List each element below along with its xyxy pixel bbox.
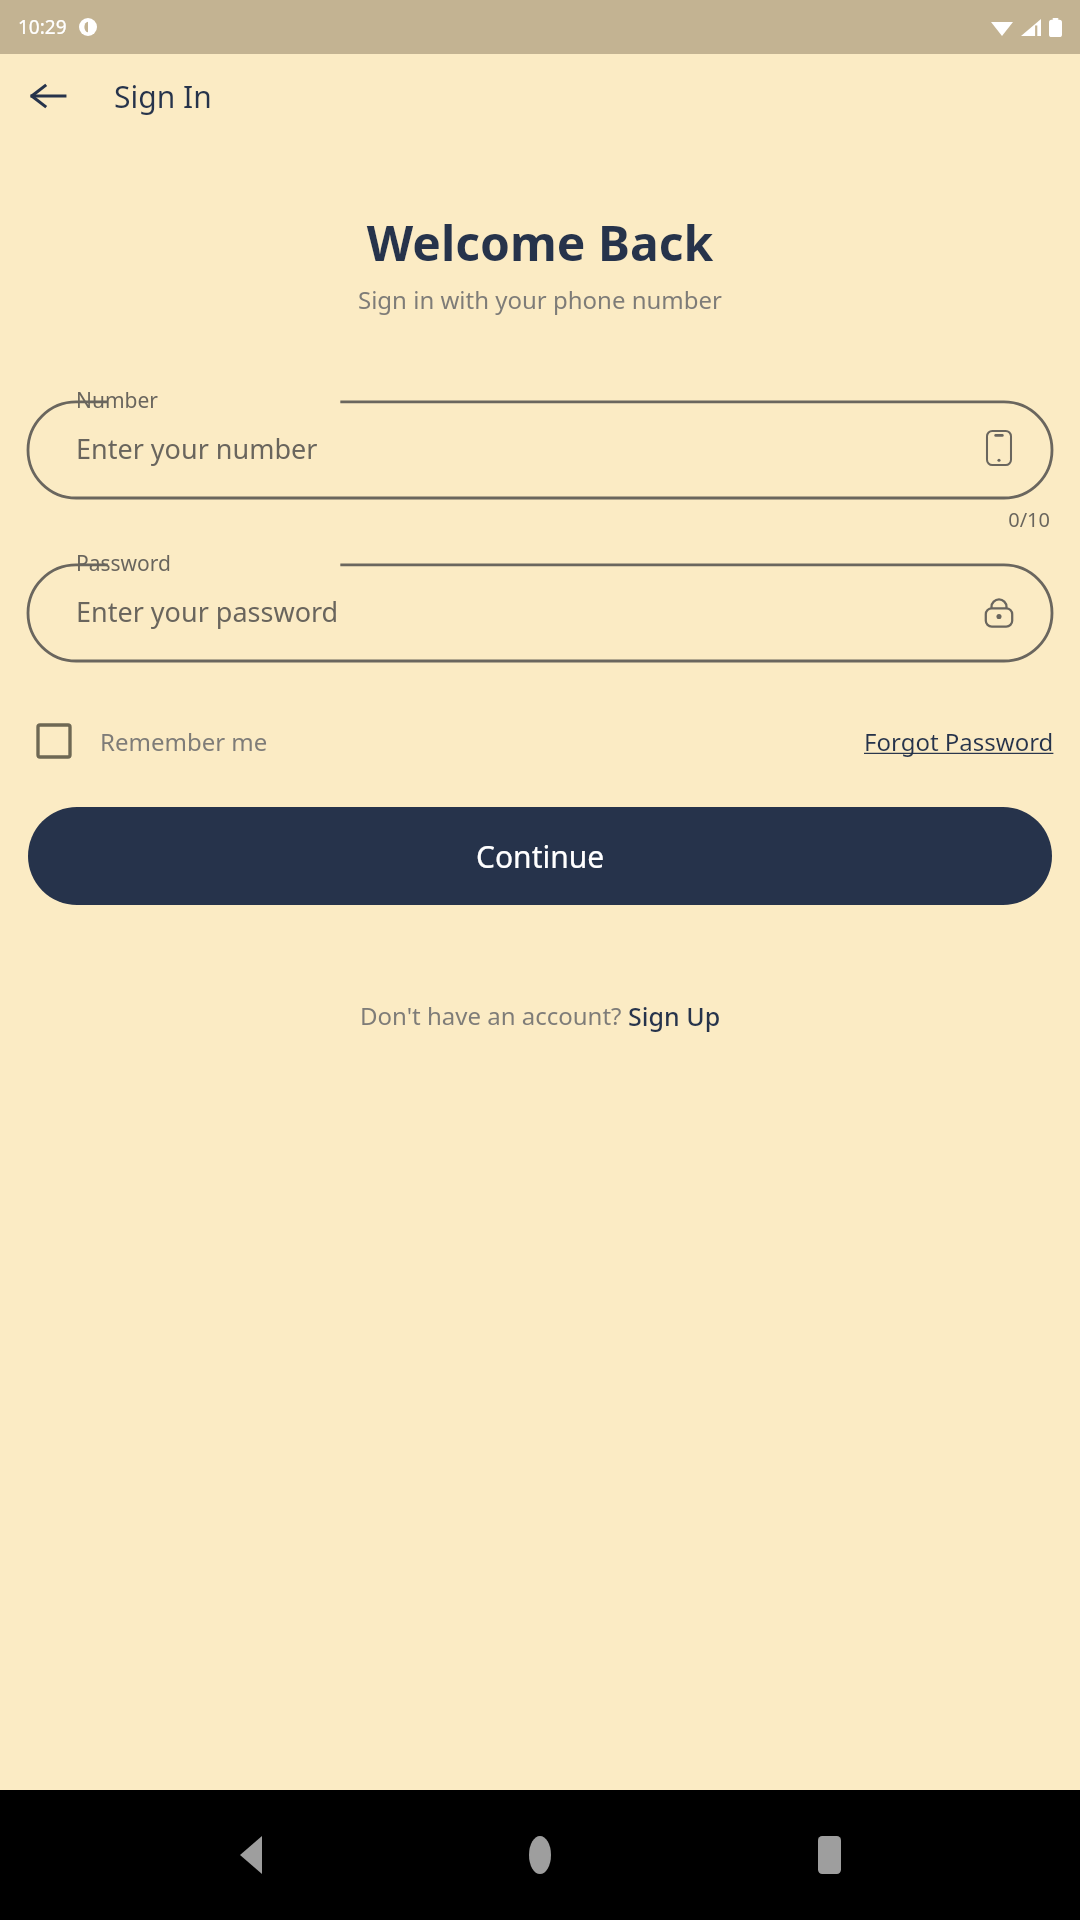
button[interactable]: Forgot Password (864, 725, 1054, 758)
staticText: 0/10 (0, 506, 1050, 533)
button[interactable]: Sign Up (628, 999, 721, 1033)
staticText: Sign Up (628, 999, 721, 1033)
staticText: Enter your password (76, 593, 339, 630)
button[interactable]: Continue (28, 807, 1052, 905)
staticText: Welcome Back (0, 210, 1080, 275)
staticText: Sign In (114, 76, 212, 117)
button[interactable]: Home (502, 1817, 578, 1893)
other: Phone (978, 427, 1020, 469)
staticText: Remember me (100, 725, 268, 758)
staticText: Number (76, 386, 159, 415)
button[interactable]: Back (213, 1817, 289, 1893)
other: Password (978, 590, 1020, 632)
button[interactable]: Recent apps (791, 1817, 867, 1893)
button[interactable]: Remember me (26, 713, 268, 769)
button[interactable]: Back (20, 68, 76, 124)
button[interactable]: Number (28, 380, 1052, 498)
staticText: Password (76, 549, 171, 578)
staticText: Enter your number (76, 430, 318, 467)
staticText: Sign in with your phone number (0, 283, 1080, 316)
staticText: Continue (476, 836, 605, 877)
staticText: Forgot Password (864, 725, 1054, 758)
staticText: Don't have an account? (360, 999, 628, 1032)
button[interactable]: Password (28, 543, 1052, 661)
staticText: 10:29 (18, 14, 67, 40)
